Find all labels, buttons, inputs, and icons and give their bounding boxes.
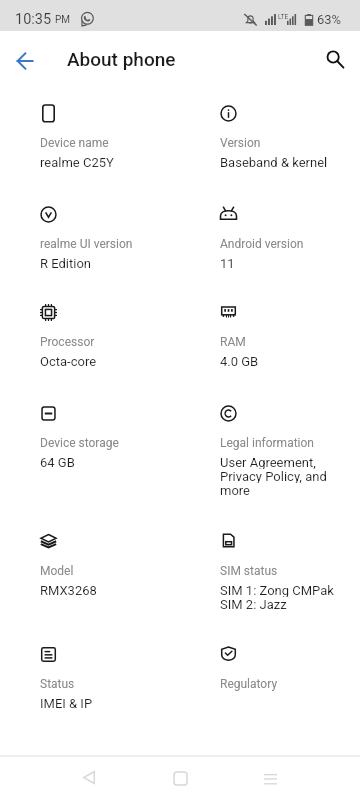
staticText: Regulatory [220,677,278,691]
staticText: Version [220,136,261,150]
button[interactable]: Model [0,535,180,601]
staticText: LTE [278,13,289,21]
button[interactable]: SIM status [180,535,360,615]
staticText: Privacy Policy, and [220,469,327,483]
button[interactable]: Regulatory [180,648,360,696]
staticText: About phone [67,48,176,70]
staticText: 4.0 GB [220,354,259,369]
button[interactable]: Search [317,41,354,78]
staticText: User Agreement, [220,455,316,469]
button[interactable]: Legal information [180,407,360,501]
staticText: Octa-core [40,354,97,369]
staticText: Device storage [40,436,119,450]
button[interactable]: Device name [0,107,180,173]
staticText: Device name [40,136,109,150]
staticText: R Edition [40,256,92,271]
staticText: realme C25Y [40,155,114,170]
staticText: SIM 2: Jazz [220,597,287,612]
button[interactable]: Processor [0,306,180,372]
staticText: more [220,483,250,498]
staticText: realme UI version [40,237,133,251]
button[interactable]: Version [180,107,360,173]
staticText: Legal information [220,436,314,450]
staticText: Android version [220,237,304,251]
staticText: 64 GB [40,455,75,470]
staticText: SIM status [220,564,278,578]
staticText: 63% [317,12,342,27]
staticText: 10:35 [15,11,52,28]
button[interactable]: Back [66,757,111,799]
button[interactable]: RAM [180,306,360,372]
staticText: Baseband & kernel [220,155,328,170]
staticText: Model [40,564,74,578]
staticText: PM [55,14,71,26]
staticText: IMEI & IP [40,696,93,711]
button[interactable]: Back [4,40,45,81]
staticText: RMX3268 [40,583,97,598]
button[interactable]: Device storage [0,407,180,473]
button[interactable]: Status [0,648,180,714]
button[interactable]: Recent apps [248,757,293,799]
button[interactable]: Android version [180,208,360,274]
button[interactable]: Home [158,757,203,799]
staticText: RAM [220,335,246,349]
staticText: SIM 1: Zong CMPak [220,583,334,597]
staticText: Processor [40,335,95,349]
button[interactable]: realme UI version [0,208,180,274]
staticText: Status [40,677,75,691]
staticText: 11 [220,256,235,271]
